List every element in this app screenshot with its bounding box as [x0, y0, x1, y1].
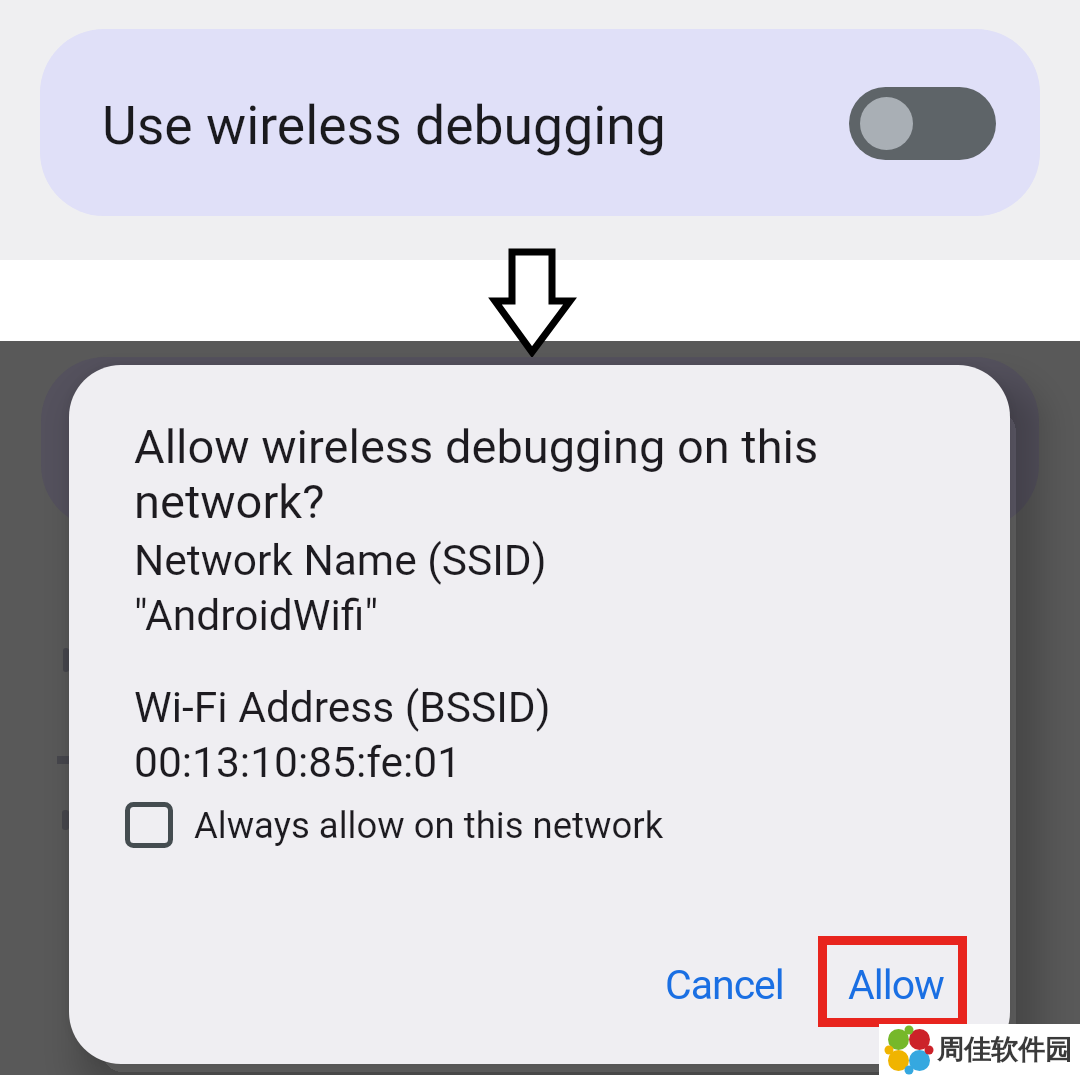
staticText: Wi-Fi Address (BSSID) 00:13:10:85:fe:01 [134, 683, 551, 787]
button[interactable]: Always allow on this network [125, 802, 664, 848]
button[interactable]: Allow [806, 945, 986, 1025]
button[interactable]: Use wireless debugging [40, 29, 1040, 216]
staticText: Network Name (SSID) "AndroidWifi" [134, 536, 547, 640]
staticText: Allow wireless debugging on this network… [134, 419, 819, 530]
staticText: 周佳软件园 [937, 1033, 1072, 1067]
staticText: Use wireless debugging [102, 94, 666, 157]
staticText: Always allow on this network [194, 804, 664, 847]
button[interactable]: Cancel [634, 945, 814, 1025]
staticText: Cancel [665, 961, 784, 1009]
button[interactable] [849, 87, 996, 160]
staticText: Allow [848, 961, 944, 1009]
